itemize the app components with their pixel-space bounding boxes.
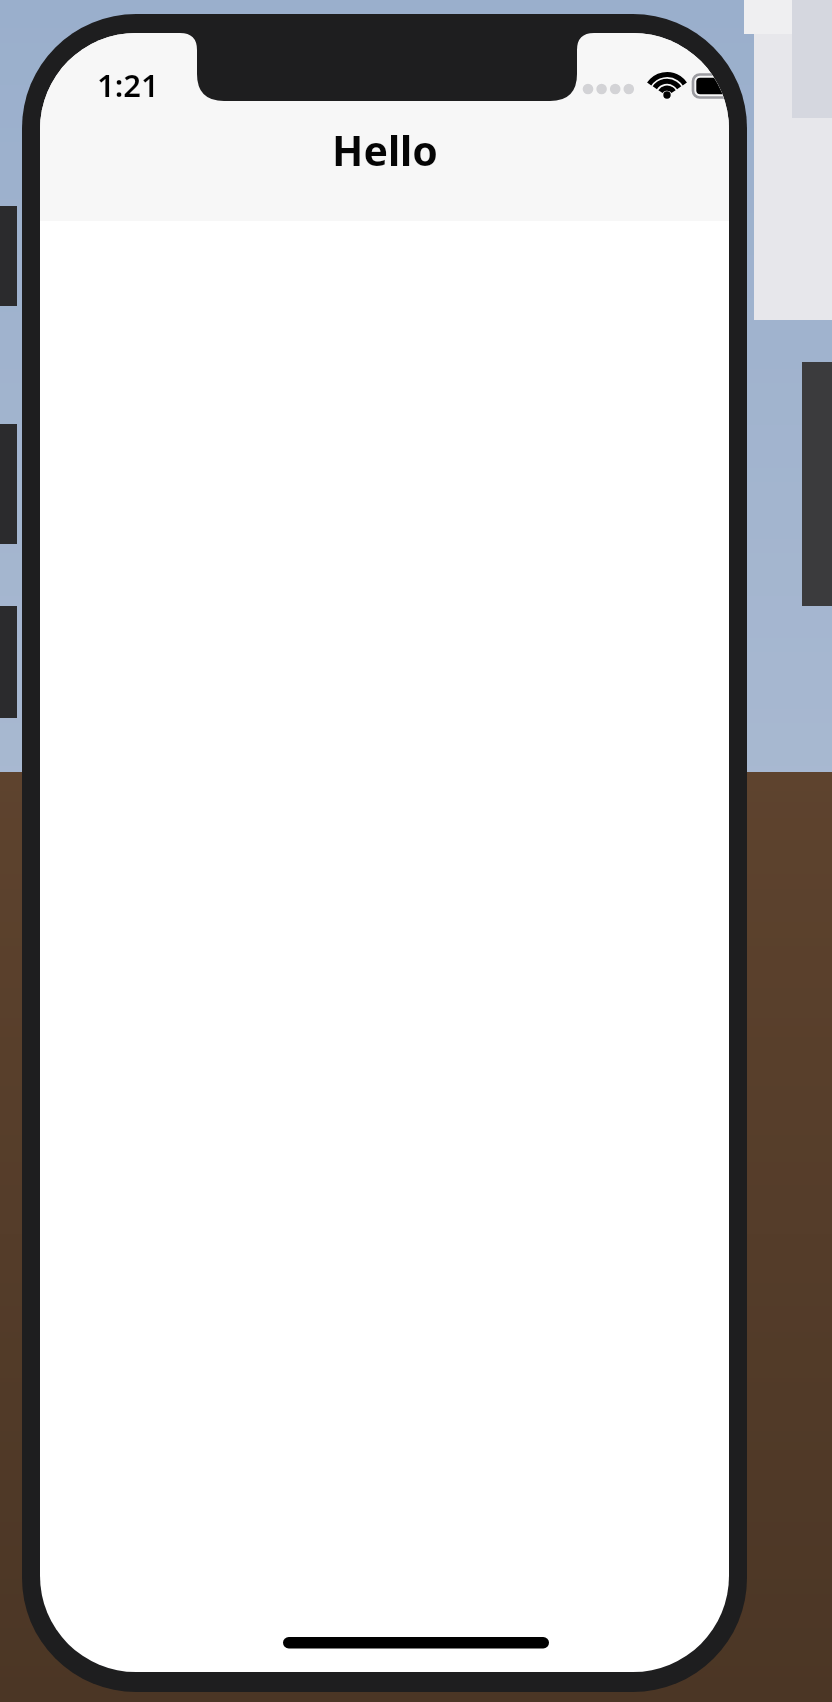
- button[interactable]: Battery: [691, 66, 745, 106]
- button[interactable]: Cellular signal: [578, 66, 648, 106]
- button[interactable]: Hello: [40, 112, 729, 188]
- staticText: 1:21: [97, 64, 159, 106]
- button[interactable]: Wi-Fi: [645, 62, 691, 108]
- staticText: Hello: [332, 122, 438, 178]
- button[interactable]: Home: [283, 1626, 549, 1658]
